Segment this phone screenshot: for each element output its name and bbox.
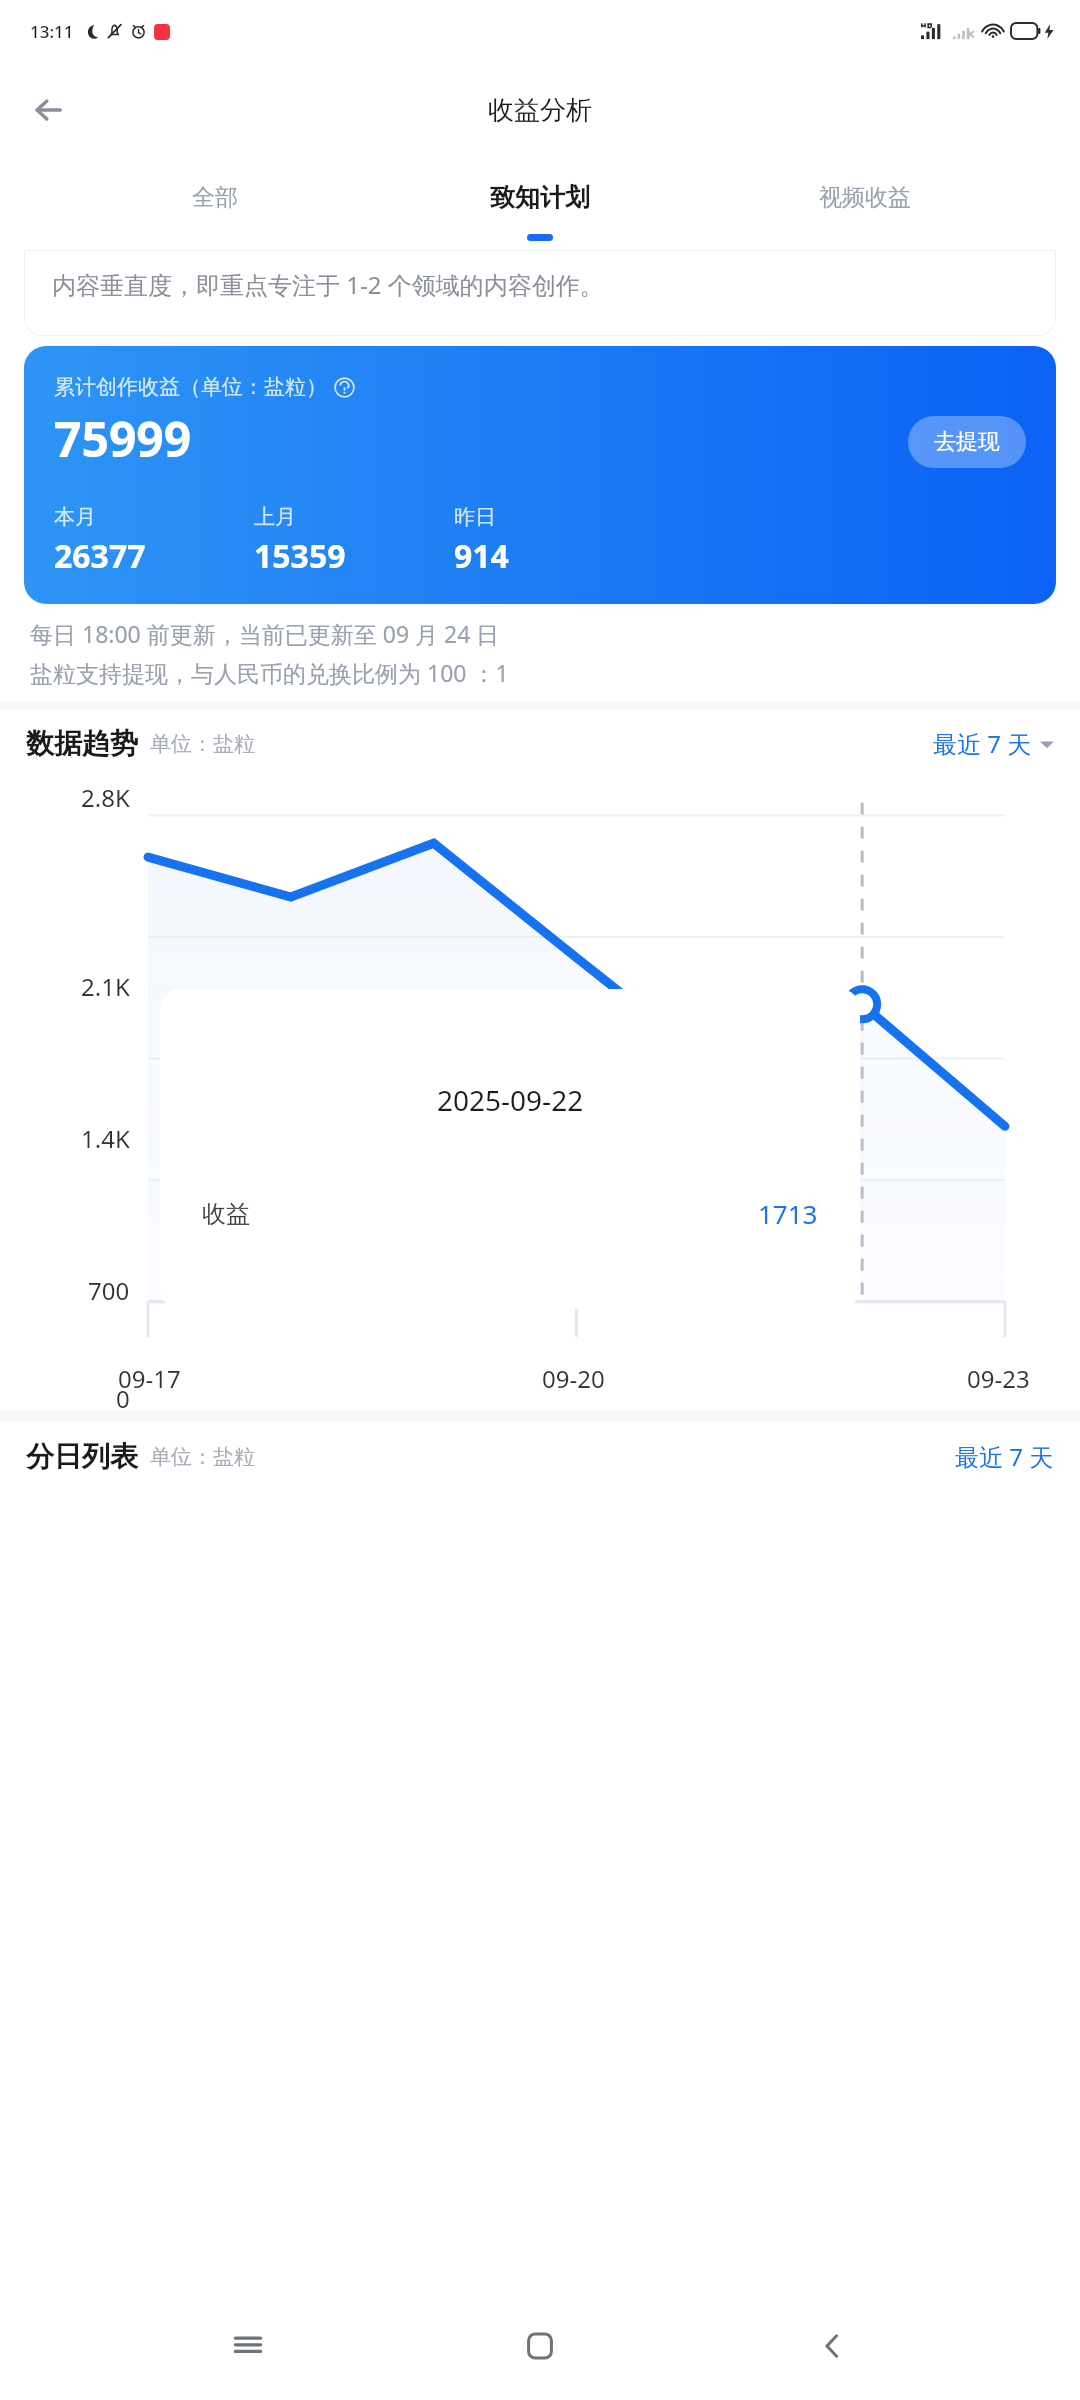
staticText: 1713 — [758, 1196, 818, 1231]
staticText: 1.4K — [81, 1122, 130, 1155]
button[interactable]: 全部 — [105, 158, 325, 236]
staticText: 26377 — [54, 534, 146, 578]
staticText: 75999 — [54, 406, 192, 471]
staticText: 每日 18:00 前更新，当前已更新至 09 月 24 日 — [30, 618, 500, 649]
staticText: 单位：盐粒 — [150, 731, 255, 757]
button[interactable]: 累计创作收益（单位：盐粒） — [24, 346, 1056, 604]
staticText: 0 — [116, 1382, 130, 1415]
button[interactable]: Back — [22, 82, 78, 138]
staticText: 盐粒支持提现，与人民币的兑换比例为 100 ：1 — [30, 657, 509, 688]
button[interactable]: 最近 7 天 — [955, 1440, 1054, 1473]
button[interactable]: Recent apps — [203, 2301, 293, 2391]
staticText: 700 — [88, 1274, 130, 1307]
staticText: 09-17 — [118, 1362, 181, 1395]
button[interactable]: 最近 7 天 — [933, 727, 1054, 760]
staticText: 2025-09-22 — [437, 1081, 584, 1119]
staticText: 昨日 — [454, 504, 496, 530]
staticText: 2.8K — [81, 781, 130, 814]
staticText: 去提现 — [934, 428, 1000, 456]
staticText: 09-20 — [542, 1362, 605, 1395]
staticText: 数据趋势 — [26, 726, 138, 761]
staticText: 2.1K — [81, 970, 130, 1003]
button[interactable]: 去提现 — [908, 416, 1026, 468]
staticText: 累计创作收益（单位：盐粒） — [54, 374, 327, 400]
staticText: 全部 — [192, 183, 238, 212]
staticText: 收益 — [202, 1199, 250, 1229]
staticText: 视频收益 — [819, 183, 911, 212]
staticText: 收益分析 — [488, 94, 592, 127]
staticText: 内容垂直度，即重点专注于 1-2 个领域的内容创作。 — [52, 268, 604, 301]
staticText: 上月 — [254, 504, 296, 530]
staticText: 15359 — [254, 534, 346, 578]
button[interactable]: 2025-09-22 — [160, 989, 860, 1309]
staticText: 09-23 — [967, 1362, 1030, 1395]
staticText: 最近 7 天 — [933, 727, 1032, 760]
staticText: 分日列表 — [26, 1439, 138, 1474]
button[interactable]: Home — [495, 2301, 585, 2391]
button[interactable]: 致知计划 — [430, 158, 650, 236]
staticText: 致知计划 — [490, 182, 590, 213]
staticText: 单位：盐粒 — [150, 1444, 255, 1470]
staticText: 本月 — [54, 504, 96, 530]
button[interactable]: Back — [788, 2301, 878, 2391]
button[interactable]: 内容垂直度，即重点专注于 1-2 个领域的内容创作。 — [24, 250, 1056, 336]
staticText: 13:11 — [30, 20, 74, 43]
button[interactable]: 视频收益 — [755, 158, 975, 236]
staticText: 914 — [454, 534, 509, 578]
